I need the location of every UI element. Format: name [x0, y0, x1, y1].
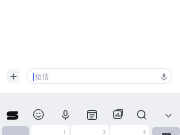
staticText: 3 [143, 129, 146, 135]
button[interactable]: 1 [31, 125, 69, 135]
button[interactable]: Search [131, 104, 153, 126]
staticText: 2 [103, 129, 106, 135]
button[interactable]: Themes [107, 103, 129, 125]
staticText: 短信 [35, 72, 49, 81]
staticText: 1 [63, 129, 66, 135]
button[interactable]: Backspace [152, 127, 180, 135]
button[interactable]: Emoji [27, 103, 49, 125]
button[interactable]: 3 [110, 125, 149, 135]
button[interactable]: Clipboard [81, 104, 103, 126]
button[interactable]: Collapse keyboard [157, 104, 179, 126]
button[interactable]: 短信 [26, 68, 172, 84]
button[interactable]: Voice input [54, 104, 76, 126]
button[interactable]: Sogou input [1, 104, 23, 126]
button[interactable]: Voice input [158, 71, 169, 82]
button[interactable]: Add attachment [6, 69, 20, 83]
button[interactable]: Symbols [2, 126, 29, 135]
button[interactable]: 2 [71, 125, 109, 135]
